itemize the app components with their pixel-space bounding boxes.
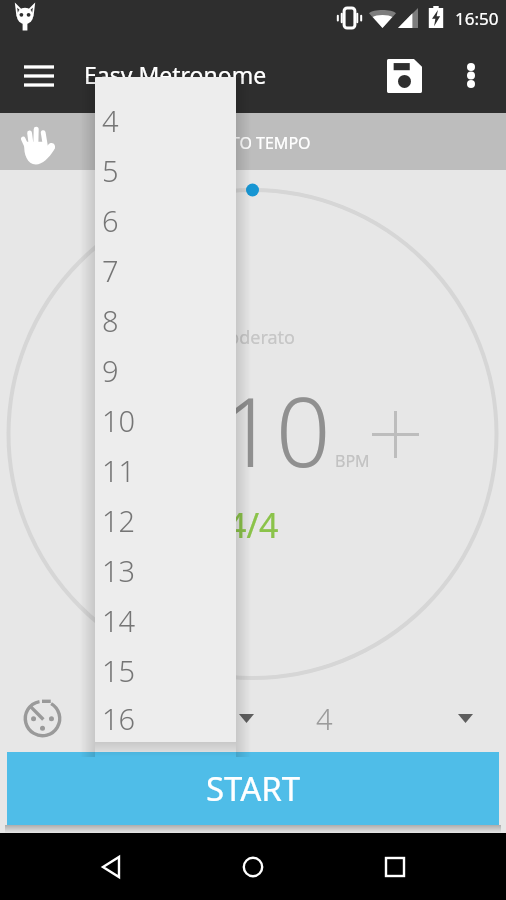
button[interactable]: 13 (95, 545, 236, 595)
button[interactable]: 4 (95, 95, 236, 145)
button[interactable]: Open navigation drawer (12, 48, 66, 102)
button[interactable]: TAP TO TEMPO (0, 113, 506, 170)
button[interactable]: Timer (16, 692, 68, 744)
button[interactable]: Note value (264, 695, 473, 741)
button[interactable]: 9 (95, 345, 236, 395)
staticText: START (206, 766, 301, 811)
staticText: 4/4 (227, 502, 279, 548)
staticText: 16:50 (455, 7, 499, 30)
staticText: 12 (102, 501, 136, 540)
staticText: 11 (102, 451, 136, 490)
button[interactable]: 5 (95, 145, 236, 195)
button[interactable]: 10 (95, 395, 236, 445)
staticText: 5 (102, 151, 119, 190)
button[interactable]: START (7, 752, 499, 825)
staticText: 6 (102, 201, 119, 240)
staticText: Moderato (212, 325, 295, 350)
button[interactable]: 8 (95, 295, 236, 345)
staticText: 110 (166, 364, 331, 495)
button[interactable]: Recents (365, 837, 425, 897)
button[interactable]: More options (443, 47, 500, 104)
staticText: 7 (102, 251, 119, 290)
staticText: TAP TO TEMPO (199, 132, 311, 154)
button[interactable]: Home (223, 837, 283, 897)
staticText: 10 (102, 401, 136, 440)
staticText: 14 (102, 601, 136, 640)
button[interactable]: Back (82, 837, 142, 897)
staticText: Easy Metronome (84, 59, 267, 90)
button[interactable]: Save (376, 47, 433, 104)
button[interactable]: Beats per measure (100, 695, 254, 741)
button[interactable]: 12 (95, 495, 236, 545)
button[interactable]: 6 (95, 195, 236, 245)
staticText: 4 (102, 101, 119, 140)
button[interactable]: 11 (95, 445, 236, 495)
button[interactable]: Increase tempo (367, 406, 423, 462)
button[interactable]: 16 (95, 695, 236, 742)
button[interactable]: 15 (95, 645, 236, 695)
staticText: 8 (102, 301, 119, 340)
staticText: 9 (102, 351, 119, 390)
staticText: 16 (102, 699, 136, 738)
staticText: 15 (102, 651, 136, 690)
staticText: 13 (102, 551, 136, 590)
button[interactable]: 14 (95, 595, 236, 645)
button[interactable]: 7 (95, 245, 236, 295)
staticText: 4 (316, 699, 333, 738)
staticText: BPM (335, 450, 370, 472)
